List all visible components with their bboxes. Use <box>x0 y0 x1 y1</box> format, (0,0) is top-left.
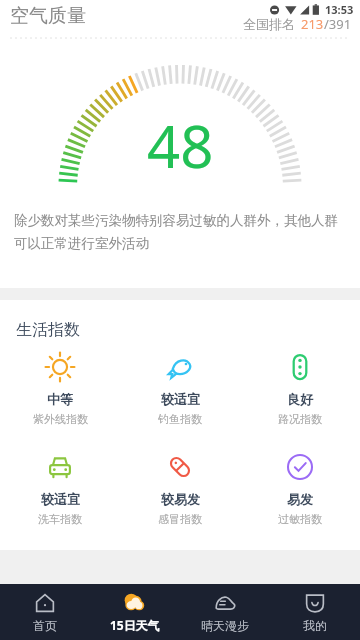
staticText: 全国排名 <box>243 16 295 32</box>
staticText: 良好 <box>287 391 313 407</box>
staticText: 紫外线指数 <box>33 412 88 426</box>
staticText: 易发 <box>287 491 313 507</box>
other: 过敏指数 <box>285 452 315 482</box>
staticText: 我的 <box>303 618 327 633</box>
staticText: 48 <box>147 106 214 185</box>
staticText: 15日天气 <box>110 617 160 633</box>
staticText: 中等 <box>47 391 73 407</box>
staticText: 钓鱼指数 <box>158 412 202 426</box>
staticText: 生活指数 <box>16 320 80 340</box>
staticText: 较易发 <box>161 491 200 507</box>
staticText: 较适宜 <box>161 391 200 407</box>
other: 首页 <box>34 592 56 614</box>
other: 紫外线指数 <box>45 352 75 382</box>
other: 晴天漫步 <box>214 592 236 614</box>
staticText: /391 <box>324 15 352 33</box>
staticText: 晴天漫步 <box>201 618 249 633</box>
button[interactable]: 过敏指数 <box>240 446 360 532</box>
staticText: 首页 <box>33 618 57 633</box>
button[interactable]: 15日天气 <box>90 584 180 640</box>
staticText: 除少数对某些污染物特别容易过敏的人群外，其他人群可以正常进行室外活动 <box>14 212 346 252</box>
button[interactable]: 我的 <box>270 584 360 640</box>
other: 感冒指数 <box>165 452 195 482</box>
staticText: 较适宜 <box>41 491 80 507</box>
button[interactable]: 钓鱼指数 <box>120 346 240 432</box>
other: 洗车指数 <box>45 452 75 482</box>
button[interactable]: 洗车指数 <box>0 446 120 532</box>
staticText: 空气质量 <box>10 4 86 28</box>
staticText: 13:53 <box>325 2 354 17</box>
staticText: 感冒指数 <box>158 512 202 526</box>
staticText: 过敏指数 <box>278 512 322 526</box>
button[interactable]: 感冒指数 <box>120 446 240 532</box>
button[interactable]: 紫外线指数 <box>0 346 120 432</box>
other: 路况指数 <box>285 352 315 382</box>
button[interactable]: 路况指数 <box>240 346 360 432</box>
other: 我的 <box>304 592 326 614</box>
staticText: 洗车指数 <box>38 512 82 526</box>
button[interactable]: 晴天漫步 <box>180 584 270 640</box>
staticText: 路况指数 <box>278 412 322 426</box>
other: 15日天气 <box>124 591 146 613</box>
button[interactable]: 首页 <box>0 584 90 640</box>
staticText: 213 <box>301 15 324 33</box>
other: 钓鱼指数 <box>165 352 195 382</box>
